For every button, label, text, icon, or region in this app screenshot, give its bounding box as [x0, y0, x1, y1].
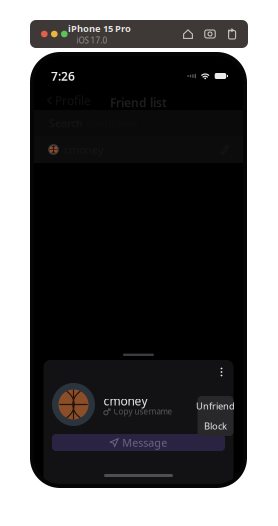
staticText: iOS 17.0 — [77, 35, 108, 46]
staticText: Profile — [55, 92, 91, 108]
staticText: Block — [204, 420, 227, 432]
staticText: 7:26 — [51, 68, 75, 84]
staticText: Friend list — [110, 95, 167, 110]
staticText: iPhone 15 Pro — [68, 22, 131, 35]
button[interactable]: Block — [197, 416, 233, 436]
staticText: cmoney — [103, 393, 147, 409]
staticText: Unfriend — [196, 400, 235, 412]
button[interactable]: cmoney — [34, 136, 243, 163]
staticText: Copy username — [113, 406, 172, 417]
button[interactable]: Screenshot — [199, 24, 221, 44]
button[interactable]: Rotate — [221, 24, 243, 44]
button[interactable]: More options — [214, 365, 228, 379]
staticText: Search — [49, 116, 83, 130]
staticText: Message — [122, 435, 167, 450]
button[interactable]: Copy username — [103, 407, 172, 416]
button[interactable]: Home — [177, 24, 199, 44]
button[interactable]: Profile — [34, 90, 97, 110]
button[interactable]: Unfriend — [197, 396, 233, 416]
button[interactable]: Message — [52, 434, 225, 451]
